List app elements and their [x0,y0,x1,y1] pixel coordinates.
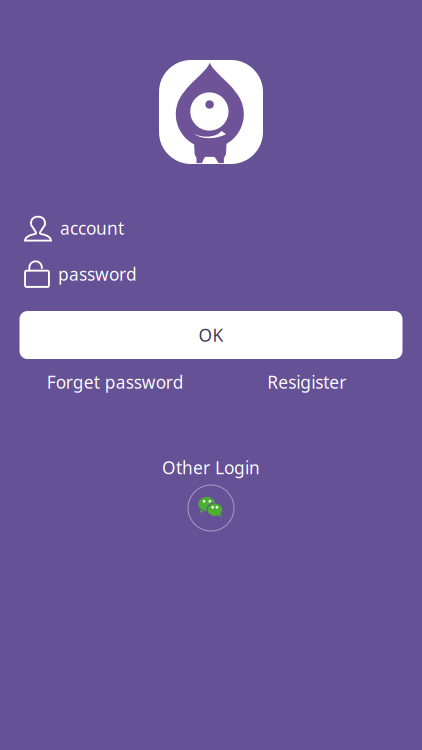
staticText: OK [198,323,223,346]
button[interactable]: Resigister [211,369,402,395]
staticText: account [60,216,124,239]
staticText: password [58,262,137,285]
button[interactable]: OK [19,311,402,359]
staticText: Other Login [162,456,260,479]
staticText: Resigister [267,370,346,393]
staticText: Forget password [47,370,184,393]
button[interactable]: Forget password [19,369,211,395]
button[interactable]: Sign in with WeChat [188,485,234,531]
